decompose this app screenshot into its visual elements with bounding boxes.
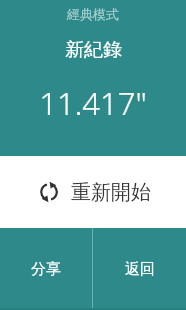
staticText: 重新開始 xyxy=(71,180,151,205)
staticText: 新紀錄 xyxy=(65,38,122,62)
button[interactable]: 分享 xyxy=(0,228,92,310)
button[interactable]: 返回 xyxy=(93,228,186,310)
staticText: 經典模式 xyxy=(67,6,119,22)
button[interactable]: Restart xyxy=(0,156,186,228)
staticText: 分享 xyxy=(31,260,61,279)
staticText: 返回 xyxy=(125,260,155,279)
staticText: 11.417" xyxy=(39,82,147,124)
other: Restart xyxy=(36,179,62,205)
